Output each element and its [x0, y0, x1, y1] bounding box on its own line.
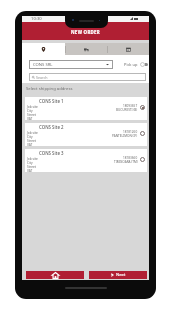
staticText: 18181260	[123, 130, 138, 134]
staticText: Job site	[27, 131, 38, 135]
button[interactable]: Pick up	[124, 60, 148, 69]
staticText: CONS Site 3	[39, 150, 64, 156]
button[interactable]: Next	[89, 271, 147, 279]
button[interactable]: CONS Site 3	[25, 149, 147, 172]
staticText: Next	[116, 272, 126, 278]
staticText: NEW ORDER	[71, 29, 101, 35]
staticText: 10:30	[31, 16, 42, 22]
staticText: VAT	[27, 169, 33, 173]
staticText: PANTELIMON (IF)	[112, 134, 138, 138]
staticText: City	[27, 161, 33, 165]
staticText: Job site	[27, 105, 38, 109]
staticText: CONS Site 1	[39, 98, 64, 104]
staticText: Select shipping address	[26, 86, 73, 92]
staticText: Job site	[27, 157, 38, 161]
button[interactable]: Search	[29, 73, 146, 81]
staticText: City	[27, 109, 33, 113]
staticText: Search	[36, 75, 48, 80]
button[interactable]: Delivery	[65, 43, 107, 55]
staticText: VAT	[27, 143, 33, 147]
staticText: BUCURESTI (B)	[116, 108, 138, 112]
button[interactable]: Location	[22, 43, 65, 55]
staticText: 18093657	[123, 104, 138, 108]
button[interactable]: CONS SRL	[29, 60, 113, 69]
staticText: 18183660	[123, 156, 138, 160]
button[interactable]: CONS Site 1	[25, 97, 147, 120]
staticText: Pick up	[124, 62, 138, 67]
button[interactable]: Home	[26, 271, 84, 279]
staticText: Street	[27, 113, 36, 117]
staticText: TIMISOARA (TM)	[114, 160, 138, 164]
button[interactable]: Schedule	[107, 43, 149, 55]
staticText: CONS SRL	[33, 62, 53, 68]
staticText: Street	[27, 165, 36, 169]
staticText: CONS Site 2	[39, 124, 64, 130]
staticText: Street	[27, 139, 36, 143]
button[interactable]: CONS Site 2	[25, 123, 147, 146]
staticText: VAT	[27, 117, 33, 121]
staticText: City	[27, 135, 33, 139]
